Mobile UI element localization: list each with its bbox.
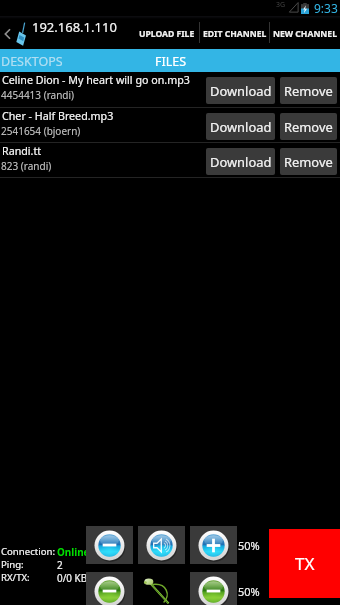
button[interactable]: TX	[269, 529, 340, 598]
staticText: FILES	[155, 53, 187, 70]
staticText: Celine Dion - My heart will go on.mp3	[2, 73, 208, 88]
button[interactable]: Decrease	[86, 526, 133, 564]
staticText: NEW CHANNEL	[273, 28, 337, 40]
staticText: UPLOAD FILE	[139, 28, 195, 40]
button[interactable]: Randi.tt	[0, 143, 340, 178]
staticText: Download	[210, 82, 272, 100]
button[interactable]: Celine Dion - My heart will go on.mp3	[0, 72, 340, 107]
staticText: 823 (randi)	[1, 159, 207, 173]
staticText: 9:33	[314, 0, 338, 16]
staticText: 0/0 KB	[57, 571, 88, 584]
button[interactable]: Download	[206, 77, 275, 104]
button[interactable]: UPLOAD FILE	[139, 16, 195, 49]
button[interactable]: Remove	[280, 113, 337, 140]
staticText: Remove	[284, 153, 333, 171]
button[interactable]: Increase	[190, 526, 237, 564]
staticText: EDIT CHANNEL	[203, 28, 267, 40]
button[interactable]: Decrease	[190, 572, 237, 605]
staticText: Remove	[284, 82, 333, 100]
staticText: 2	[57, 558, 63, 571]
staticText: RX/TX:	[1, 571, 30, 584]
staticText: 192.168.1.110	[32, 18, 117, 36]
button[interactable]: NEW CHANNEL	[272, 16, 337, 49]
staticText: 3G	[276, 0, 286, 10]
button[interactable]: Speaker	[138, 526, 185, 564]
staticText: Cher - Half Breed.mp3	[2, 109, 208, 124]
staticText: Randi.tt	[2, 144, 208, 159]
button[interactable]: Navigate up	[0, 17, 29, 50]
staticText: 50%	[238, 584, 260, 599]
button[interactable]: Remove	[280, 77, 337, 104]
staticText: Connection:	[1, 545, 55, 558]
staticText: Ping:	[1, 558, 24, 571]
button[interactable]: Decrease	[86, 572, 133, 605]
button[interactable]: Download	[206, 148, 275, 175]
staticText: TX	[295, 552, 315, 575]
button[interactable]: Download	[206, 113, 275, 140]
staticText: 50%	[238, 538, 260, 553]
staticText: 4454413 (randi)	[1, 88, 207, 102]
button[interactable]: Remove	[280, 148, 337, 175]
button[interactable]: FILES	[125, 49, 217, 72]
staticText: Download	[210, 153, 272, 171]
staticText: Remove	[284, 118, 333, 136]
staticText: DESKTOPS	[1, 53, 63, 70]
staticText: Download	[210, 118, 272, 136]
staticText: Online	[57, 545, 90, 558]
staticText: 2541654 (bjoern)	[1, 124, 207, 138]
button[interactable]: DESKTOPS	[0, 49, 125, 72]
button[interactable]: Cher - Half Breed.mp3	[0, 108, 340, 143]
button[interactable]: EDIT CHANNEL	[202, 16, 267, 49]
